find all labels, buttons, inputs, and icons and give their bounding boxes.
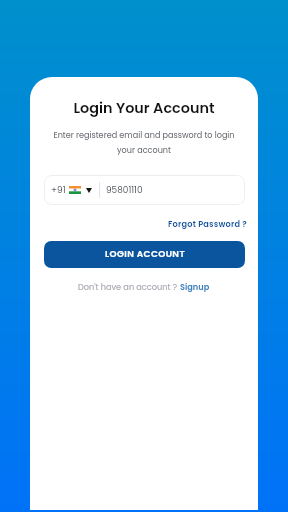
button[interactable]: Signup — [180, 281, 210, 292]
staticText: +91 — [51, 184, 66, 196]
button[interactable]: +91 — [44, 175, 245, 205]
staticText: 95801110 — [106, 184, 143, 196]
button[interactable]: Forgot Password ? — [168, 218, 247, 229]
staticText: Login Your Account — [30, 98, 258, 118]
staticText: LOGIN ACCOUNT — [105, 248, 185, 261]
staticText: Enter registered email and password to l… — [47, 129, 241, 156]
staticText: Don't have an account ? — [78, 281, 180, 292]
button[interactable]: LOGIN ACCOUNT — [44, 241, 245, 268]
